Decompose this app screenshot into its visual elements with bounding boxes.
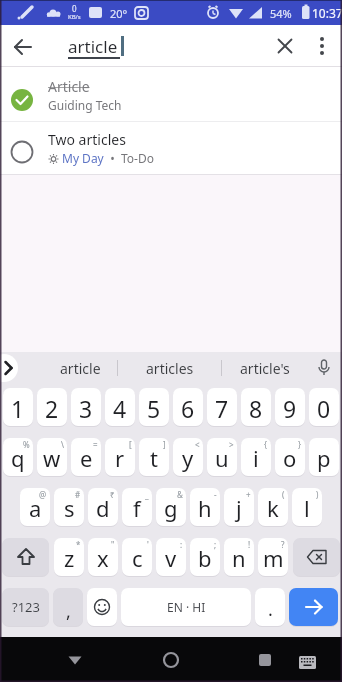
button[interactable]: 7 xyxy=(207,388,237,426)
staticText: c xyxy=(132,543,143,573)
button[interactable] xyxy=(245,640,285,680)
button[interactable]: b xyxy=(190,538,220,576)
staticText: h xyxy=(198,493,212,523)
button[interactable]: g xyxy=(156,488,186,526)
button[interactable]: Article xyxy=(0,67,342,121)
button[interactable]: w xyxy=(37,438,67,476)
button[interactable] xyxy=(87,588,117,626)
button[interactable]: . xyxy=(255,588,285,626)
button[interactable]: e xyxy=(71,438,101,476)
button[interactable]: article xyxy=(20,352,140,384)
staticText: + xyxy=(246,489,251,500)
button[interactable] xyxy=(55,640,95,680)
button[interactable] xyxy=(0,26,40,66)
button[interactable]: p xyxy=(309,438,339,476)
staticText: - xyxy=(214,489,217,500)
button[interactable] xyxy=(293,538,340,576)
button[interactable]: ?123 xyxy=(2,588,49,626)
staticText: k xyxy=(267,493,279,523)
staticText: 10:37 xyxy=(312,5,342,21)
staticText: 20° xyxy=(110,6,128,21)
staticText: article xyxy=(68,35,118,58)
button[interactable]: 6 xyxy=(173,388,203,426)
button[interactable]: 4 xyxy=(105,388,135,426)
button[interactable]: 8 xyxy=(241,388,271,426)
button[interactable] xyxy=(2,538,49,576)
staticText: j xyxy=(236,493,242,523)
button[interactable]: EN · HI xyxy=(121,588,251,626)
button[interactable]: 5 xyxy=(139,388,169,426)
button[interactable]: f xyxy=(122,488,152,526)
button[interactable]: y xyxy=(173,438,203,476)
staticText: ?123 xyxy=(12,598,40,616)
staticText: KB/s xyxy=(68,13,81,21)
button[interactable]: l xyxy=(292,488,322,526)
staticText: • xyxy=(104,150,121,166)
button[interactable]: article's xyxy=(222,352,307,384)
staticText: < xyxy=(195,439,200,450)
button[interactable]: v xyxy=(156,538,186,576)
staticText: 8 xyxy=(249,393,263,424)
button[interactable]: 3 xyxy=(71,388,101,426)
staticText: ( xyxy=(282,489,285,500)
staticText: To-Do xyxy=(121,150,154,166)
button[interactable] xyxy=(151,640,191,680)
staticText: articles xyxy=(146,359,194,378)
staticText: Article xyxy=(48,77,90,96)
button[interactable] xyxy=(267,28,303,64)
button[interactable]: 9 xyxy=(275,388,305,426)
button[interactable]: o xyxy=(275,438,305,476)
button[interactable]: n xyxy=(224,538,254,576)
button[interactable]: k xyxy=(258,488,288,526)
staticText: . xyxy=(268,597,273,622)
staticText: u xyxy=(215,443,229,473)
button[interactable] xyxy=(289,588,338,626)
button[interactable]: u xyxy=(207,438,237,476)
staticText: \ xyxy=(61,439,64,450)
staticText: 9 xyxy=(283,393,297,424)
button[interactable]: 1 xyxy=(3,388,33,426)
staticText: t xyxy=(150,443,158,473)
button[interactable]: c xyxy=(122,538,152,576)
staticText: x xyxy=(97,543,109,573)
staticText: 2 xyxy=(45,393,59,424)
button[interactable]: d xyxy=(88,488,118,526)
staticText: EN · HI xyxy=(167,599,206,615)
button[interactable]: x xyxy=(88,538,118,576)
button[interactable] xyxy=(294,646,322,674)
staticText: 54% xyxy=(270,6,292,21)
staticText: " xyxy=(111,539,115,550)
staticText: n xyxy=(232,543,246,573)
button[interactable]: t xyxy=(139,438,169,476)
staticText: 3 xyxy=(79,393,93,424)
staticText: { xyxy=(264,439,268,450)
staticText: 5 xyxy=(147,393,161,424)
button[interactable]: 0 xyxy=(309,388,339,426)
staticText: _ xyxy=(145,489,149,500)
staticText: f xyxy=(133,493,141,523)
staticText: % xyxy=(23,439,30,450)
staticText: article's xyxy=(240,359,290,378)
staticText: & xyxy=(177,489,183,500)
button[interactable]: 2 xyxy=(37,388,67,426)
button[interactable]: i xyxy=(241,438,271,476)
button[interactable]: , xyxy=(53,588,83,626)
staticText: r xyxy=(115,443,125,473)
button[interactable]: j xyxy=(224,488,254,526)
button[interactable]: h xyxy=(190,488,220,526)
staticText: p xyxy=(317,443,331,473)
button[interactable] xyxy=(314,358,334,378)
button[interactable]: articles xyxy=(118,352,221,384)
button[interactable]: a xyxy=(20,488,50,526)
button[interactable] xyxy=(306,28,342,64)
staticText: 0 xyxy=(72,3,77,14)
button[interactable]: r xyxy=(105,438,135,476)
staticText: g xyxy=(164,493,178,523)
button[interactable]: z xyxy=(54,538,84,576)
button[interactable]: q xyxy=(3,438,33,476)
button[interactable]: Two articles xyxy=(0,122,342,174)
staticText: e xyxy=(80,443,93,473)
button[interactable]: s xyxy=(54,488,84,526)
button[interactable]: m xyxy=(258,538,288,576)
button[interactable] xyxy=(0,354,18,382)
